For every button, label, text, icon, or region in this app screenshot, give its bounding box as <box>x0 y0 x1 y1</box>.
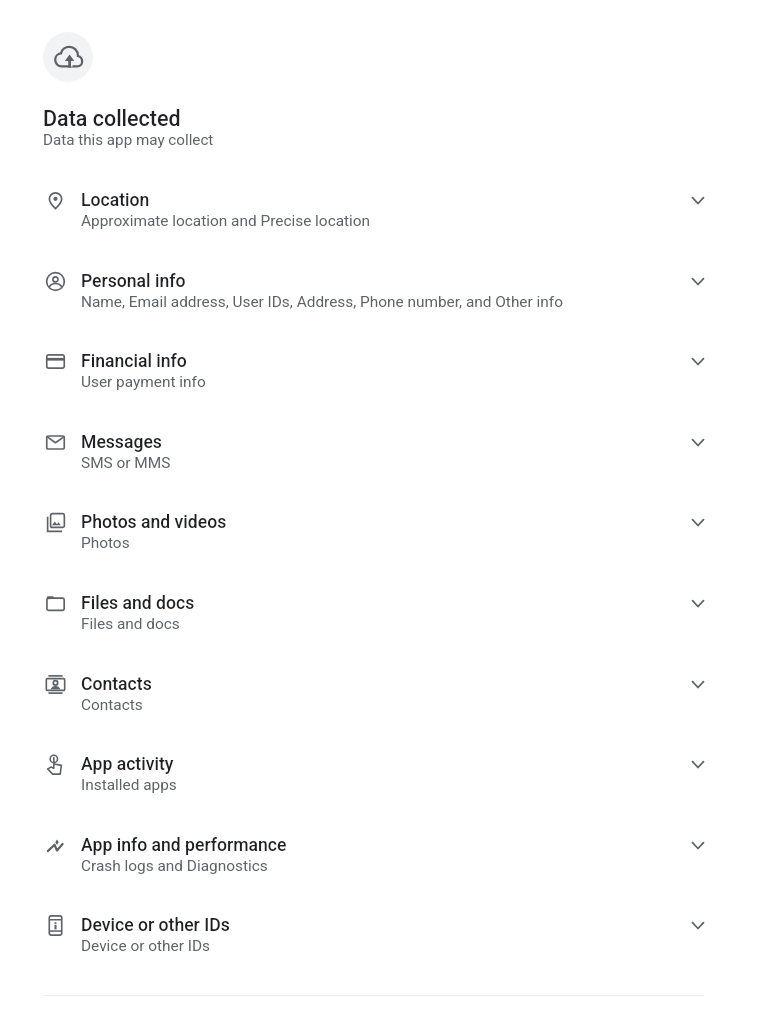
staticText: App info and performance <box>81 835 287 856</box>
button[interactable]: Financial info <box>0 351 774 432</box>
button[interactable]: Photos and videos <box>0 512 774 593</box>
staticText: Name, Email address, User IDs, Address, … <box>81 293 563 311</box>
other: Expand <box>688 270 708 290</box>
button[interactable]: Files and docs <box>0 593 774 674</box>
staticText: Contacts <box>81 696 143 714</box>
button[interactable]: Messages <box>0 432 774 513</box>
button[interactable]: Location <box>0 190 774 271</box>
other: Expand <box>688 592 708 612</box>
staticText: Personal info <box>81 271 186 292</box>
other: Expand <box>688 189 708 209</box>
staticText: Data collected <box>43 106 181 131</box>
button[interactable]: Personal info <box>0 271 774 352</box>
staticText: User payment info <box>81 373 206 391</box>
other: Expand <box>688 673 708 693</box>
staticText: Contacts <box>81 674 152 695</box>
staticText: Files and docs <box>81 593 195 614</box>
button[interactable]: App info and performance <box>0 835 774 916</box>
staticText: Photos and videos <box>81 512 227 533</box>
other: Expand <box>688 914 708 934</box>
staticText: Device or other IDs <box>81 915 230 936</box>
staticText: Approximate location and Precise locatio… <box>81 212 371 230</box>
staticText: Device or other IDs <box>81 937 210 955</box>
staticText: Installed apps <box>81 776 177 794</box>
button[interactable]: Device or other IDs <box>0 915 774 996</box>
staticText: Financial info <box>81 351 187 372</box>
button[interactable]: Contacts <box>0 674 774 755</box>
staticText: Photos <box>81 534 130 552</box>
staticText: Files and docs <box>81 615 180 633</box>
staticText: Data this app may collect <box>43 131 214 149</box>
button[interactable]: App activity <box>0 754 774 835</box>
other: Expand <box>688 753 708 773</box>
other: Expand <box>688 350 708 370</box>
staticText: App activity <box>81 754 174 775</box>
other: Data collected <box>43 32 93 82</box>
staticText: SMS or MMS <box>81 454 171 472</box>
other: Expand <box>688 511 708 531</box>
other: Expand <box>688 834 708 854</box>
other: Expand <box>688 431 708 451</box>
staticText: Location <box>81 190 150 211</box>
staticText: Messages <box>81 432 162 453</box>
staticText: Crash logs and Diagnostics <box>81 857 268 875</box>
